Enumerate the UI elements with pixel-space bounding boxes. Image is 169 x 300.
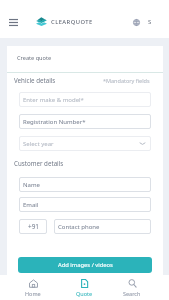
button[interactable]: Language bbox=[131, 18, 152, 26]
staticText: Enter make & model* bbox=[23, 96, 84, 104]
staticText: Contact phone bbox=[58, 223, 100, 231]
staticText: Add images / videos bbox=[58, 261, 113, 269]
button[interactable]: Quote bbox=[64, 275, 104, 300]
button[interactable]: Email bbox=[19, 197, 151, 212]
staticText: Customer details bbox=[14, 159, 64, 167]
button[interactable]: Registration Number* bbox=[19, 114, 151, 129]
staticText: Quote bbox=[76, 290, 93, 297]
staticText: Registration Number* bbox=[23, 118, 86, 126]
staticText: CLEARQUOTE bbox=[51, 18, 93, 26]
button[interactable]: Menu bbox=[7, 16, 20, 29]
staticText: Create quote bbox=[17, 54, 52, 62]
button[interactable]: Home bbox=[13, 275, 53, 300]
staticText: Email bbox=[23, 201, 39, 209]
button[interactable]: +91 bbox=[19, 219, 47, 234]
staticText: Home bbox=[25, 290, 41, 297]
button[interactable]: Search bbox=[112, 275, 152, 300]
button[interactable]: Enter make & model* bbox=[19, 92, 151, 107]
staticText: +91 bbox=[28, 222, 39, 231]
staticText: Search bbox=[123, 290, 141, 297]
button[interactable]: Select year bbox=[19, 136, 151, 151]
button[interactable]: Add images / videos bbox=[18, 257, 152, 273]
button[interactable]: Contact phone bbox=[54, 219, 151, 234]
staticText: S bbox=[148, 18, 152, 26]
staticText: Name bbox=[23, 181, 40, 189]
staticText: Vehicle details bbox=[14, 76, 56, 84]
staticText: *Mandatory fields bbox=[103, 77, 150, 84]
staticText: Select year bbox=[23, 140, 54, 148]
button[interactable]: Name bbox=[19, 177, 151, 192]
